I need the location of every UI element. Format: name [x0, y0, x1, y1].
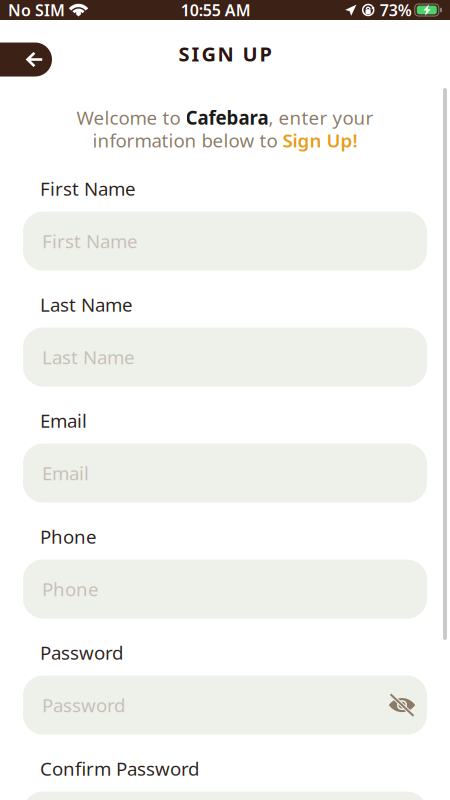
staticText: information below to — [92, 128, 282, 153]
staticText: No SIM — [8, 0, 65, 21]
button[interactable]: Email — [23, 444, 427, 503]
button[interactable]: Back — [0, 42, 70, 76]
button[interactable]: Password — [23, 676, 427, 735]
staticText: Email — [40, 408, 87, 433]
staticText: Password — [40, 640, 123, 665]
staticText: Last Name — [42, 345, 135, 369]
button[interactable]: Last Name — [23, 328, 427, 387]
staticText: Confirm Password — [40, 756, 199, 781]
staticText: Welcome to — [76, 105, 185, 130]
staticText: Sign Up! — [282, 128, 357, 153]
staticText: Cafebara — [185, 105, 268, 130]
staticText: Password — [42, 693, 125, 717]
button[interactable]: Confirm Password — [23, 792, 427, 800]
button[interactable]: Phone — [23, 560, 427, 619]
staticText: Email — [42, 461, 89, 485]
staticText: Phone — [40, 524, 97, 549]
staticText: First Name — [42, 229, 138, 253]
staticText: Phone — [42, 577, 99, 601]
staticText: 73% — [380, 0, 412, 21]
staticText: Last Name — [40, 292, 133, 317]
button[interactable]: First Name — [23, 212, 427, 271]
staticText: 10:55 AM — [181, 0, 251, 21]
staticText: SIGN UP — [178, 40, 271, 67]
staticText: First Name — [40, 176, 136, 201]
staticText: , enter your — [268, 105, 373, 130]
